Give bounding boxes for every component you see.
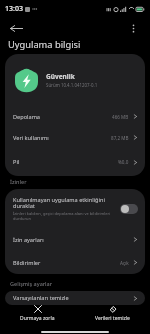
button[interactable]: İzin ayarları: [5, 228, 145, 251]
button[interactable]: Bildirimler: [5, 251, 145, 274]
button[interactable]: Back: [6, 18, 26, 38]
staticText: Bildirimler: [13, 259, 41, 267]
staticText: Güvenlik: [46, 72, 75, 81]
button[interactable]: Toggle pause app activity: [120, 204, 138, 214]
button[interactable]: Durmaya zorla: [0, 305, 75, 322]
staticText: Verileri temizle: [95, 315, 130, 322]
button[interactable]: Veri kullanımı: [5, 127, 145, 148]
staticText: 13:03: [5, 4, 23, 14]
staticText: Kullanılmayan uygulama etkinliğini durak…: [13, 196, 113, 210]
staticText: 466 MB: [112, 114, 129, 120]
staticText: 87,2 MB: [111, 135, 129, 141]
staticText: İzinler: [10, 178, 27, 185]
staticText: Gelişmiş ayarlar: [10, 280, 53, 287]
button[interactable]: Verileri temizle: [75, 305, 150, 322]
staticText: %0,0: [118, 159, 129, 165]
button[interactable]: Depolama: [5, 106, 145, 127]
staticText: Varsayılanları temizle: [13, 294, 69, 302]
staticText: Veri kullanımı: [13, 134, 49, 142]
staticText: Pil: [13, 158, 20, 166]
staticText: Durmaya zorla: [20, 315, 55, 322]
staticText: Açık: [120, 260, 129, 266]
button[interactable]: Kullanılmayan uygulama etkinliğini durak…: [5, 189, 145, 228]
staticText: Uygulama bilgisi: [8, 38, 81, 51]
button[interactable]: More options: [124, 19, 142, 37]
staticText: İzinleri kaldırın, geçici depolama alanı…: [13, 211, 113, 222]
staticText: İzin ayarları: [13, 236, 44, 244]
staticText: Depolama: [13, 113, 41, 121]
button[interactable]: Pil: [5, 148, 145, 176]
button[interactable]: Varsayılanları temizle: [5, 291, 145, 305]
staticText: Sürüm 10.4.1.041207-0.1: [46, 82, 98, 88]
